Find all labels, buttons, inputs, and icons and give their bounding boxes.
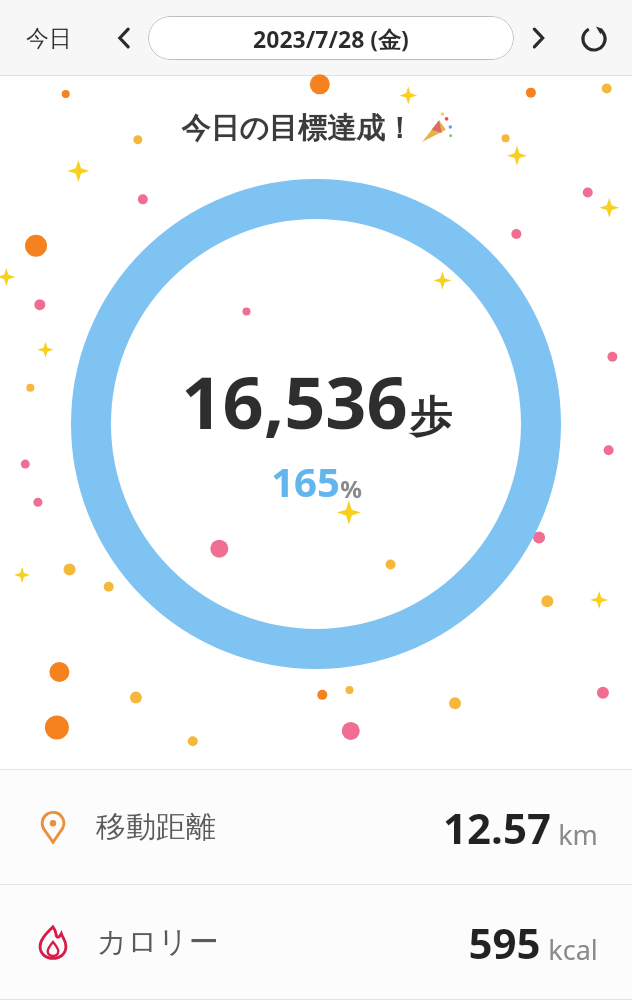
staticText: カロリー <box>96 923 219 961</box>
button[interactable]: 移動距離 <box>0 770 632 884</box>
staticText: 2023/7/28 (金) <box>253 23 409 54</box>
staticText: 12.57 <box>443 799 551 856</box>
button[interactable]: カロリー <box>0 885 632 999</box>
staticText: kcal <box>548 931 598 968</box>
staticText: 今日 <box>26 24 72 53</box>
staticText: 歩 <box>410 391 452 444</box>
staticText: % <box>340 472 362 505</box>
staticText: 移動距離 <box>96 808 216 846</box>
staticText: 595 <box>468 914 541 971</box>
button[interactable]: Next day <box>516 16 560 60</box>
button[interactable]: Previous day <box>102 16 146 60</box>
button[interactable]: Refresh <box>570 14 618 62</box>
button[interactable]: 今日 <box>14 18 84 59</box>
staticText: 16,536 <box>181 352 408 450</box>
staticText: km <box>558 816 598 853</box>
staticText: 今日の目標達成！ <box>181 110 414 147</box>
button[interactable]: 2023/7/28 (金) <box>148 16 514 60</box>
staticText: 165 <box>271 454 340 508</box>
